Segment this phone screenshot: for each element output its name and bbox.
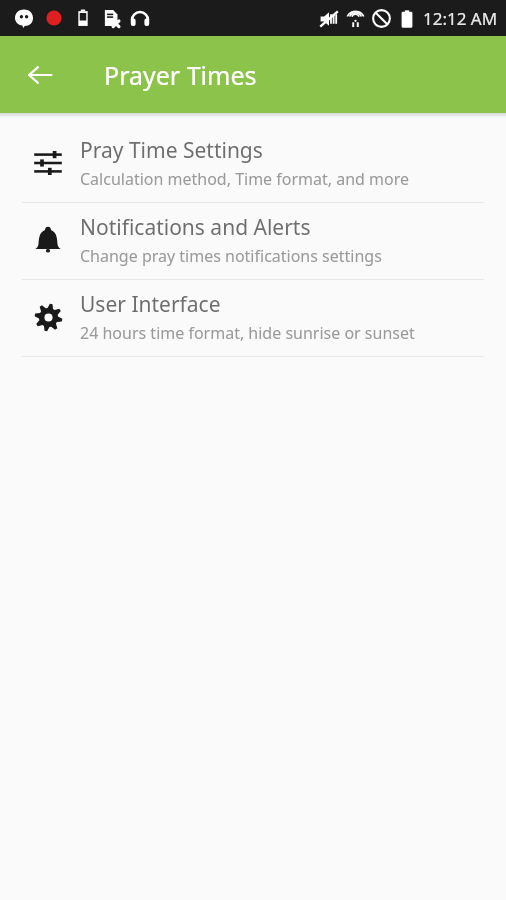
button[interactable]: Notifications and Alerts <box>0 203 506 280</box>
staticText: Change pray times notifications settings <box>80 245 382 267</box>
staticText: 12:12 AM <box>423 7 498 30</box>
staticText: User Interface <box>80 290 221 319</box>
staticText: Pray Time Settings <box>80 136 263 165</box>
button[interactable]: Back <box>14 49 66 101</box>
staticText: 24 hours time format, hide sunrise or su… <box>80 322 415 344</box>
staticText: Calculation method, Time format, and mor… <box>80 168 410 190</box>
button[interactable]: User Interface <box>0 280 506 357</box>
staticText: Notifications and Alerts <box>80 213 311 242</box>
button[interactable]: Pray Time Settings <box>0 126 506 203</box>
staticText: Prayer Times <box>104 58 257 92</box>
